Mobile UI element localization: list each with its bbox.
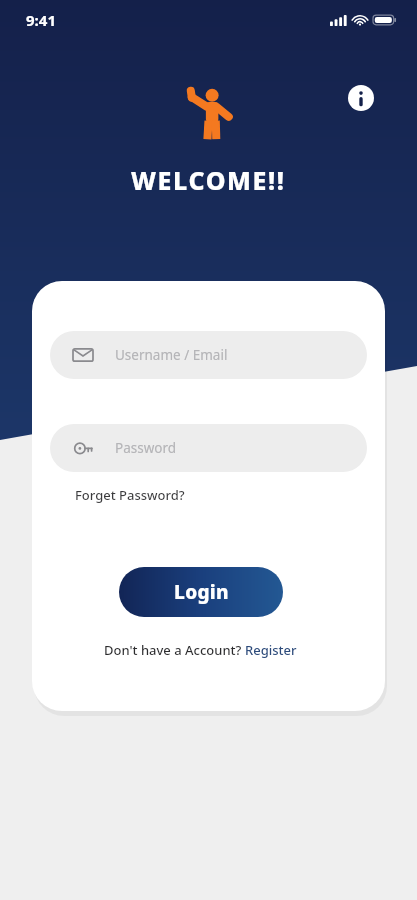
staticText: Register [245, 641, 297, 659]
button[interactable]: Password [50, 424, 367, 472]
staticText: 9:41 [26, 10, 56, 30]
staticText: Username / Email [115, 346, 228, 364]
staticText: Forget Password? [75, 486, 185, 504]
staticText: Password [115, 439, 177, 457]
button[interactable]: Email [50, 331, 367, 379]
button[interactable]: Forget Password? [73, 484, 187, 506]
staticText: Login [174, 579, 229, 605]
button[interactable]: Don't have a Account? [101, 639, 300, 661]
button[interactable]: Information [346, 83, 376, 113]
button[interactable]: Login [119, 567, 283, 617]
staticText: WELCOME!! [131, 163, 286, 197]
staticText: Don't have a Account? [104, 641, 245, 659]
